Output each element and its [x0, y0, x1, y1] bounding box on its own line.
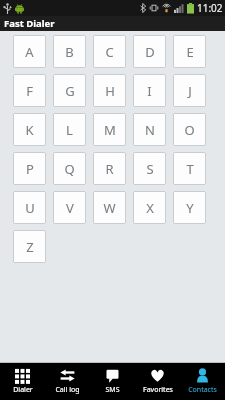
staticText: C	[105, 43, 114, 61]
staticText: W	[103, 199, 116, 217]
staticText: Y	[186, 199, 194, 217]
button[interactable]: J	[173, 74, 206, 107]
button[interactable]: E	[173, 35, 206, 68]
staticText: Call log	[55, 385, 80, 395]
button[interactable]: S	[133, 152, 166, 185]
staticText: B	[65, 43, 74, 61]
button[interactable]: C	[93, 35, 126, 68]
button[interactable]: M	[93, 113, 126, 146]
other: Dialer	[15, 368, 30, 383]
button[interactable]: Y	[173, 191, 206, 224]
staticText: Z	[26, 238, 34, 256]
staticText: F	[26, 82, 33, 100]
staticText: E	[186, 43, 194, 61]
staticText: H	[105, 82, 115, 100]
staticText: P	[26, 160, 34, 178]
other: Contacts	[195, 368, 210, 383]
button[interactable]: P	[13, 152, 46, 185]
staticText: R	[105, 160, 114, 178]
button[interactable]: N	[133, 113, 166, 146]
button[interactable]: K	[13, 113, 46, 146]
button[interactable]: Dialer	[0, 363, 45, 400]
staticText: O	[184, 121, 195, 139]
button[interactable]: L	[53, 113, 86, 146]
button[interactable]: U	[13, 191, 46, 224]
staticText: D	[145, 43, 155, 61]
button[interactable]: Q	[53, 152, 86, 185]
staticText: N	[145, 121, 155, 139]
staticText: G	[65, 82, 75, 100]
other: SMS	[105, 368, 120, 383]
staticText: X	[146, 199, 154, 217]
staticText: U	[25, 199, 35, 217]
button[interactable]: A	[13, 35, 46, 68]
button[interactable]: G	[53, 74, 86, 107]
staticText: Favorites	[143, 385, 173, 395]
staticText: J	[188, 82, 192, 100]
staticText: I	[147, 82, 152, 100]
staticText: Q	[64, 160, 75, 178]
button[interactable]: V	[53, 191, 86, 224]
staticText: V	[66, 199, 74, 217]
staticText: T	[186, 160, 194, 178]
button[interactable]: R	[93, 152, 126, 185]
button[interactable]: B	[53, 35, 86, 68]
button[interactable]: W	[93, 191, 126, 224]
button[interactable]: D	[133, 35, 166, 68]
button[interactable]: Contacts	[180, 363, 225, 400]
staticText: S	[146, 160, 154, 178]
other: Call log	[60, 368, 75, 383]
button[interactable]: F	[13, 74, 46, 107]
staticText: 11:02	[197, 1, 223, 15]
button[interactable]: H	[93, 74, 126, 107]
button[interactable]: O	[173, 113, 206, 146]
staticText: Dialer	[13, 385, 33, 395]
other: Favorites	[150, 368, 165, 383]
staticText: A	[25, 43, 34, 61]
staticText: M	[104, 121, 116, 139]
staticText: Fast Dialer	[4, 17, 55, 30]
button[interactable]: T	[173, 152, 206, 185]
button[interactable]: Call log	[45, 363, 90, 400]
staticText: SMS	[105, 385, 120, 395]
button[interactable]: SMS	[90, 363, 135, 400]
button[interactable]: Z	[13, 230, 46, 263]
staticText: K	[25, 121, 34, 139]
button[interactable]: I	[133, 74, 166, 107]
staticText: Contacts	[188, 385, 217, 395]
button[interactable]: X	[133, 191, 166, 224]
staticText: L	[66, 121, 73, 139]
button[interactable]: Favorites	[135, 363, 180, 400]
